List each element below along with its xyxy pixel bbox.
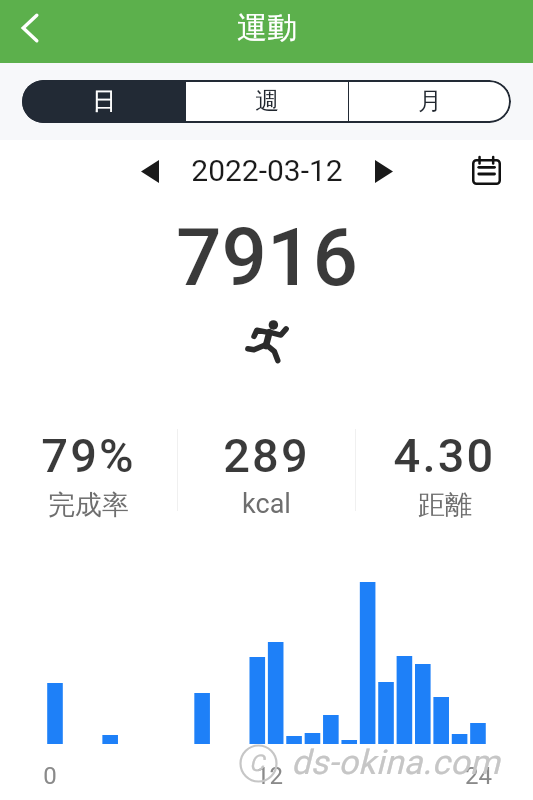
button[interactable]: 289 xyxy=(178,425,355,525)
staticText: 月 xyxy=(418,86,442,116)
staticText: 距離 xyxy=(418,488,472,522)
button[interactable]: 79% xyxy=(0,425,177,525)
staticText: 運動 xyxy=(237,9,297,47)
button[interactable]: Next day xyxy=(367,154,401,188)
button[interactable]: 月 xyxy=(349,80,511,123)
button[interactable]: 日 xyxy=(22,80,185,123)
staticText: 24 xyxy=(465,762,492,790)
staticText: ds-okina.com xyxy=(291,742,501,782)
staticText: 7916 xyxy=(176,211,358,305)
staticText: C xyxy=(249,750,264,777)
button[interactable]: 週 xyxy=(186,80,348,123)
staticText: 289 xyxy=(223,428,310,483)
staticText: 週 xyxy=(255,86,279,116)
staticText: 0 xyxy=(43,762,57,790)
staticText: 日 xyxy=(92,86,116,116)
button[interactable]: 4.30 xyxy=(356,425,533,525)
button[interactable]: Previous day xyxy=(133,154,167,188)
staticText: 79% xyxy=(41,428,136,483)
staticText: 4.30 xyxy=(393,428,496,483)
staticText: 2022-03-12 xyxy=(191,153,343,188)
staticText: 完成率 xyxy=(48,488,129,522)
button[interactable]: Calendar xyxy=(463,148,509,194)
button[interactable]: Back xyxy=(7,5,53,51)
staticText: 12 xyxy=(256,762,283,790)
staticText: kcal xyxy=(242,488,291,520)
